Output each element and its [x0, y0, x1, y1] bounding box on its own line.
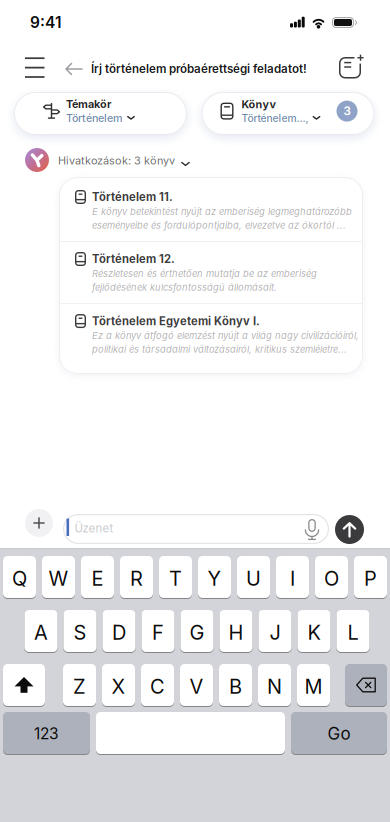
staticText: I [290, 566, 295, 591]
staticText: O [324, 566, 339, 591]
staticText: M [304, 674, 322, 699]
button[interactable]: Back [61, 56, 87, 82]
staticText: P [364, 566, 377, 591]
staticText: D [112, 620, 126, 645]
button[interactable]: V [180, 664, 213, 706]
staticText: X [111, 674, 125, 699]
button[interactable]: Z [63, 664, 96, 706]
button[interactable]: Y [198, 556, 231, 598]
staticText: Írj történelem próbaérettségi feladatot! [91, 62, 307, 76]
button[interactable]: M [297, 664, 330, 706]
staticText: Történelem..., [241, 112, 308, 124]
button[interactable]: Menu [17, 49, 53, 86]
button[interactable]: H [219, 610, 252, 652]
button[interactable]: New chat [336, 52, 366, 82]
staticText: C [150, 674, 165, 699]
staticText: Történelem 11. [92, 190, 173, 204]
button[interactable]: Shift [3, 664, 45, 706]
staticText: K [307, 620, 320, 645]
button[interactable]: D [102, 610, 135, 652]
staticText: Q [12, 566, 27, 591]
staticText: L [347, 620, 358, 645]
staticText: Történelem 12. [92, 252, 175, 266]
staticText: A [34, 620, 48, 645]
button[interactable]: Témakör [14, 92, 187, 135]
button[interactable]: N [258, 664, 291, 706]
button[interactable]: K [297, 610, 330, 652]
staticText: 123 [34, 724, 59, 743]
staticText: Témakör [66, 98, 111, 111]
button[interactable]: P [354, 556, 387, 598]
button[interactable]: R [120, 556, 153, 598]
staticText: Hivatkozások: 3 könyv [58, 154, 175, 167]
button[interactable]: F [141, 610, 174, 652]
staticText: E [91, 566, 103, 591]
staticText: W [48, 566, 68, 591]
staticText: B [229, 674, 242, 699]
staticText: R [130, 566, 143, 591]
button[interactable]: Go [291, 712, 387, 754]
button[interactable]: U [237, 556, 270, 598]
button[interactable]: G [180, 610, 213, 652]
staticText: E könyv betekintést nyújt az emberiség l… [92, 206, 352, 231]
button[interactable]: 123 [3, 712, 90, 754]
staticText: Történelem [66, 112, 123, 125]
button[interactable]: Hivatkozások: 3 könyv [58, 149, 194, 175]
staticText: 9:41 [30, 13, 62, 32]
button[interactable]: Könyv [203, 92, 376, 135]
staticText: G [189, 620, 204, 645]
staticText: Y [207, 566, 221, 591]
button[interactable]: Message [63, 514, 329, 544]
button[interactable]: C [141, 664, 174, 706]
button[interactable]: Történelem 11. [59, 180, 363, 241]
button[interactable]: Történelem Egyetemi Könyv I. [59, 304, 363, 365]
staticText: F [152, 620, 164, 645]
button[interactable]: Történelem 12. [59, 242, 363, 303]
staticText: J [269, 620, 280, 645]
button[interactable]: J [258, 610, 291, 652]
button[interactable]: B [219, 664, 252, 706]
staticText: Üzenet [74, 521, 113, 535]
button[interactable]: X [102, 664, 135, 706]
button[interactable]: Add [25, 509, 53, 537]
button[interactable]: Dictate [304, 518, 320, 540]
staticText: Könyv [241, 98, 275, 111]
button[interactable]: S [63, 610, 96, 652]
staticText: Történelem Egyetemi Könyv I. [92, 314, 260, 328]
button[interactable]: Send [335, 515, 364, 544]
button[interactable]: E [81, 556, 114, 598]
button[interactable]: A [24, 610, 57, 652]
staticText: Z [73, 674, 86, 699]
staticText: N [267, 674, 282, 699]
staticText: H [228, 620, 243, 645]
button[interactable]: L [336, 610, 369, 652]
staticText: V [189, 674, 203, 699]
staticText: S [73, 620, 86, 645]
button[interactable]: O [315, 556, 348, 598]
button[interactable]: I [276, 556, 309, 598]
staticText: T [169, 566, 182, 591]
staticText: 3 [343, 104, 350, 118]
staticText: Go [327, 723, 350, 744]
staticText: U [246, 566, 261, 591]
button[interactable]: T [159, 556, 192, 598]
staticText: Részletesen és érthetően mutatja be az e… [92, 268, 317, 293]
button[interactable]: Delete [345, 664, 387, 706]
button[interactable]: Q [3, 556, 36, 598]
staticText: Ez a könyv átfogó elemzést nyújt a világ… [92, 330, 359, 355]
button[interactable]: W [42, 556, 75, 598]
